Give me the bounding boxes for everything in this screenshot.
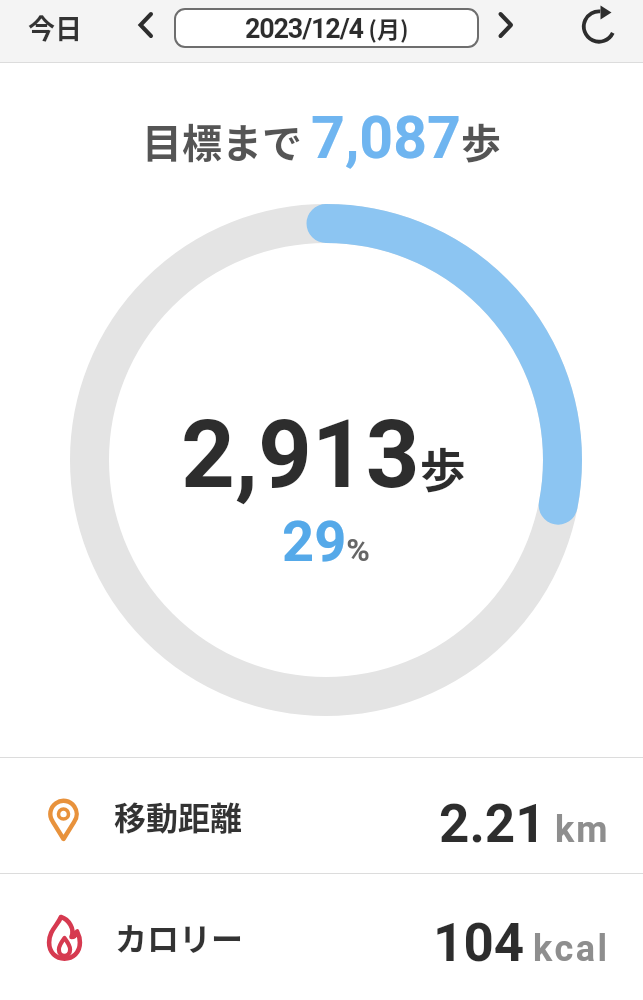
staticText: 目標まで 7,087歩 — [142, 103, 501, 172]
staticText: カロリー — [115, 914, 244, 960]
button[interactable] — [578, 5, 620, 47]
staticText: 29% — [282, 509, 370, 575]
button[interactable] — [496, 12, 514, 38]
button[interactable]: 移動距離 — [0, 758, 643, 873]
button[interactable] — [136, 12, 154, 38]
button[interactable]: カロリー — [0, 874, 643, 1000]
staticText: 2,913歩 — [181, 400, 466, 510]
staticText: km — [555, 809, 610, 851]
staticText: 移動距離 — [114, 793, 243, 839]
button[interactable]: 今日 — [28, 8, 82, 47]
staticText: 104 — [433, 912, 525, 974]
staticText: 2023/12/4 (月) — [245, 11, 409, 44]
button[interactable]: 2023/12/4 (月) — [174, 8, 479, 48]
staticText: 2.21 — [439, 793, 546, 855]
staticText: kcal — [533, 928, 610, 970]
